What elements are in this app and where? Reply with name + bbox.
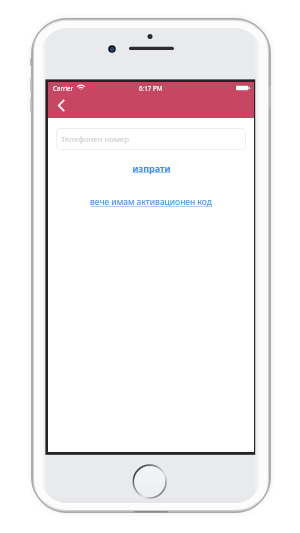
button[interactable]: вече имам активационен код [90, 196, 212, 208]
staticText: 6:17 PM [139, 84, 163, 92]
button[interactable]: Телефонен номер [56, 128, 246, 150]
staticText: Телефонен номер [61, 134, 129, 145]
button[interactable]: изпрати [132, 162, 171, 174]
staticText: Carrier [53, 84, 74, 92]
button[interactable]: Back [51, 93, 71, 118]
